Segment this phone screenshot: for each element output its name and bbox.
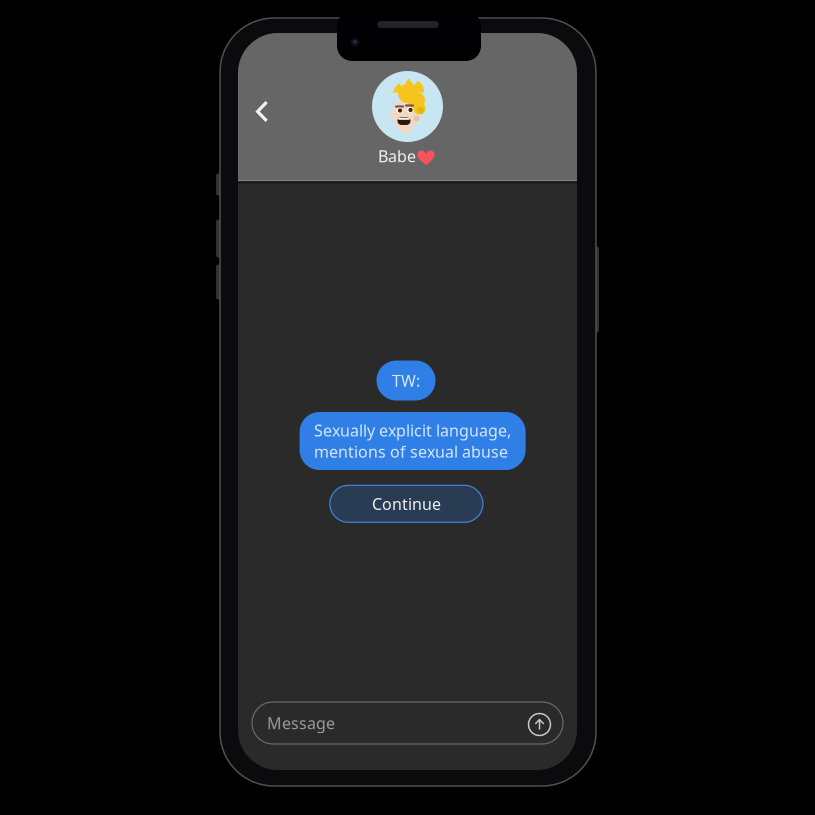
- staticText: Message: [267, 712, 335, 734]
- staticText: Continue: [372, 493, 441, 514]
- staticText: Babe: [378, 145, 416, 167]
- staticText: TW:: [392, 370, 420, 391]
- button[interactable]: Continue: [330, 485, 483, 522]
- button[interactable]: Back: [242, 91, 282, 131]
- staticText: Sexually explicit language, mentions of …: [314, 420, 511, 462]
- button[interactable]: Send: [526, 712, 548, 734]
